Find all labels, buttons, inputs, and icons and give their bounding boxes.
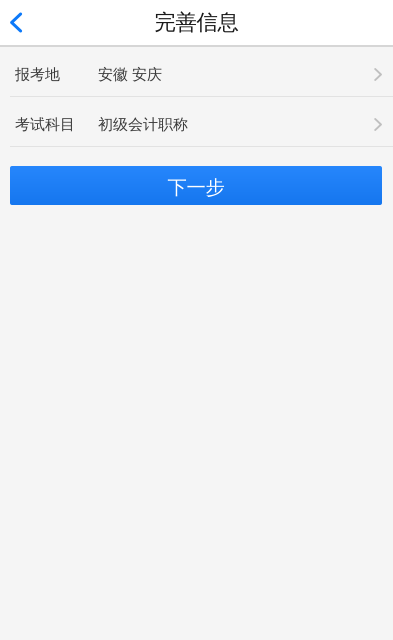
button[interactable]: 报考地 bbox=[0, 47, 393, 96]
staticText: 初级会计职称 bbox=[98, 115, 188, 134]
button[interactable]: Back bbox=[0, 0, 36, 44]
staticText: 完善信息 bbox=[154, 9, 238, 36]
staticText: 安徽 安庆 bbox=[98, 65, 162, 84]
staticText: 报考地 bbox=[15, 65, 60, 84]
button[interactable]: 考试科目 bbox=[0, 97, 393, 146]
staticText: 考试科目 bbox=[15, 115, 75, 134]
staticText: 下一步 bbox=[167, 175, 224, 200]
button[interactable]: 下一步 bbox=[10, 166, 382, 205]
